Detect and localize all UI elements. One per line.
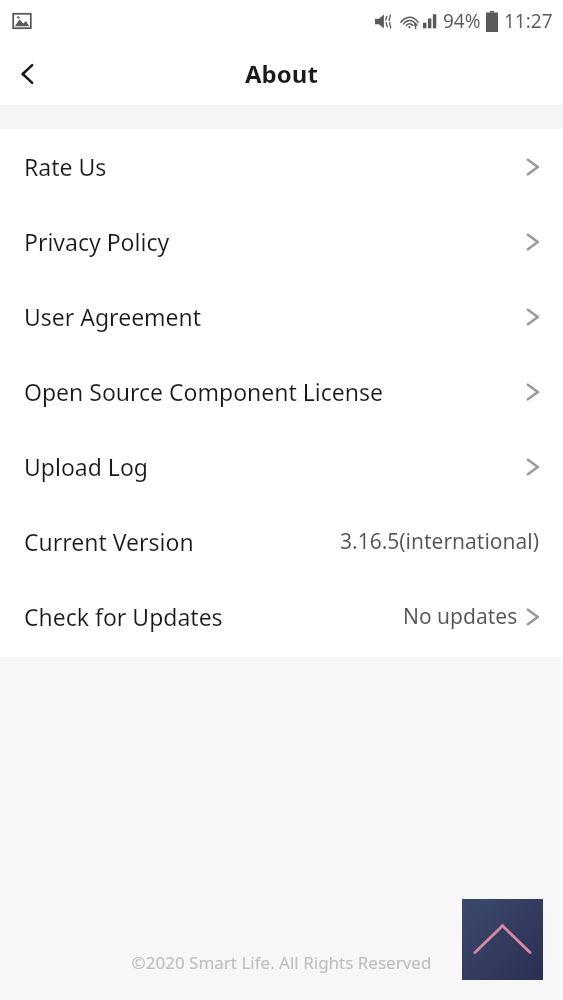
button[interactable]: Privacy Policy [0,204,563,279]
button[interactable]: User Agreement [0,279,563,354]
button[interactable]: Rate Us [0,129,563,204]
staticText: 94% [443,8,481,34]
staticText: User Agreement [24,301,525,332]
staticText: About [245,57,318,90]
staticText: Current Version [24,526,194,557]
staticText: Upload Log [24,451,525,482]
staticText: Open Source Component License [24,376,525,407]
staticText: ©2020 Smart Life. All Rights Reserved [0,951,563,974]
button[interactable]: Back [0,46,56,102]
staticText: 11:27 [504,8,553,34]
button[interactable]: Check for Updates [0,579,563,654]
button[interactable]: Upload Log [0,429,563,504]
staticText: No updates [403,602,518,631]
button[interactable]: App logo [462,899,543,980]
button[interactable]: Current Version [0,504,563,579]
staticText: Check for Updates [24,601,403,632]
staticText: Rate Us [24,151,525,182]
button[interactable]: Open Source Component License [0,354,563,429]
staticText: 3.16.5(international) [340,527,540,556]
staticText: Privacy Policy [24,226,525,257]
